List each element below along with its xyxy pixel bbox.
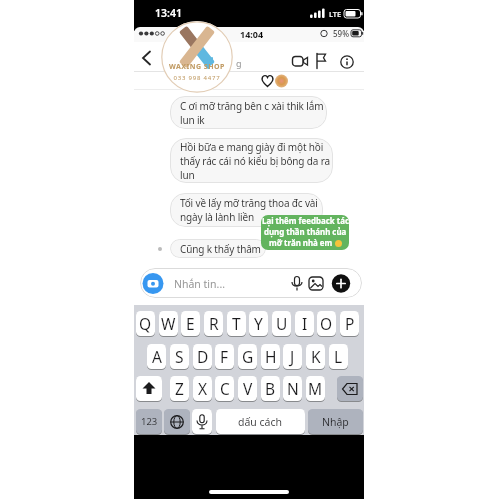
staticText: J	[290, 346, 295, 367]
staticText: g	[236, 57, 242, 69]
staticText: P	[345, 313, 355, 334]
staticText: G	[242, 346, 254, 367]
button[interactable]: dấu cách	[216, 409, 305, 434]
staticText: B	[265, 378, 276, 399]
button[interactable]: G	[238, 344, 257, 369]
button[interactable]: C ơi mỡ trăng bên c xài thik lắm	[170, 96, 327, 129]
button[interactable]: Cũng k thấy thâm	[170, 239, 266, 258]
staticText: V	[243, 378, 253, 399]
button[interactable]: P	[340, 311, 359, 336]
button[interactable]: T	[227, 311, 246, 336]
button[interactable]: E	[181, 311, 200, 336]
button[interactable]	[140, 268, 362, 298]
staticText: thấy rác cái nó kiểu bị bông da ra	[180, 154, 330, 168]
staticText: C	[220, 378, 230, 399]
button[interactable]: J	[283, 344, 302, 369]
staticText: U	[276, 313, 288, 334]
button[interactable]	[292, 54, 309, 69]
staticText: E	[186, 313, 195, 334]
button[interactable]: H	[261, 344, 280, 369]
button[interactable]: V	[238, 376, 257, 401]
staticText: F	[220, 346, 229, 367]
staticText: lun ik	[180, 113, 205, 127]
staticText: C ơi mỡ trăng bên c xài thik lắm	[180, 99, 324, 113]
staticText: T	[232, 313, 241, 334]
staticText: 14:04	[240, 28, 264, 40]
staticText: Tối về lấy mỡ trăng thoa đc vài	[180, 196, 318, 210]
button[interactable]	[136, 376, 162, 401]
staticText: Z	[175, 378, 184, 399]
staticText: W	[161, 313, 176, 334]
button[interactable]: A	[147, 344, 166, 369]
staticText: lun	[180, 168, 195, 182]
button[interactable]: Lại thêm feedback tác	[261, 215, 349, 250]
staticText: X	[198, 378, 208, 399]
staticText: Lại thêm feedback tác	[262, 216, 349, 227]
button[interactable]: S	[170, 344, 189, 369]
staticText: Y	[254, 313, 263, 334]
button[interactable]: Nhập	[308, 409, 363, 434]
staticText: L	[334, 346, 343, 367]
button[interactable]: R	[204, 311, 223, 336]
staticText: M	[308, 378, 323, 399]
staticText: A	[152, 346, 162, 367]
button[interactable]	[192, 409, 212, 434]
staticText: I	[302, 313, 308, 334]
staticText: S	[175, 346, 184, 367]
staticText: Nhắn tin...	[174, 277, 226, 291]
staticText: 123	[141, 415, 158, 428]
staticText: R	[209, 313, 219, 334]
button[interactable]: C	[215, 376, 234, 401]
staticText: Nhập	[322, 415, 349, 429]
staticText: LTE	[329, 9, 342, 19]
button[interactable]: L	[329, 344, 348, 369]
staticText: N	[287, 378, 299, 399]
button[interactable]: Tối về lấy mỡ trăng thoa đc vài	[170, 193, 323, 227]
staticText: K	[311, 346, 321, 367]
staticText: dụng thần thánh của	[264, 227, 347, 238]
staticText: mỡ trăn nhà em	[269, 238, 335, 249]
button[interactable]: B	[261, 376, 280, 401]
button[interactable]: K	[306, 344, 325, 369]
button[interactable]: Z	[170, 376, 189, 401]
staticText: WAXING SHOP	[161, 62, 233, 72]
staticText: 033 998 4477	[161, 74, 233, 82]
button[interactable]: Hồi bữa e mang giày đi một hồi	[170, 138, 333, 183]
staticText: dấu cách	[238, 415, 283, 429]
staticText: Hồi bữa e mang giày đi một hồi	[180, 140, 324, 154]
staticText: O	[320, 313, 333, 334]
button[interactable]: W	[159, 311, 178, 336]
button[interactable]: F	[215, 344, 234, 369]
button[interactable]: X	[193, 376, 212, 401]
button[interactable]: Y	[249, 311, 268, 336]
button[interactable]	[164, 409, 190, 434]
button[interactable]: 123	[136, 409, 162, 434]
button[interactable]: N	[283, 376, 302, 401]
staticText: H	[265, 346, 277, 367]
staticText: ngày là lành liền	[180, 210, 255, 224]
button[interactable]	[140, 50, 154, 66]
button[interactable]: I	[295, 311, 314, 336]
button[interactable]	[340, 55, 354, 69]
staticText: Cũng k thấy thâm	[180, 242, 261, 256]
staticText: 13:41	[155, 6, 182, 20]
staticText: D	[197, 346, 209, 367]
button[interactable]: U	[272, 311, 291, 336]
button[interactable]: O	[317, 311, 336, 336]
button[interactable]	[316, 53, 327, 69]
button[interactable]: Q	[136, 311, 155, 336]
staticText: 59%	[333, 28, 349, 39]
staticText: Q	[139, 313, 152, 334]
button[interactable]: D	[193, 344, 212, 369]
button[interactable]: M	[306, 376, 325, 401]
button[interactable]: WAXING SHOP	[161, 21, 233, 93]
button[interactable]	[337, 376, 363, 401]
